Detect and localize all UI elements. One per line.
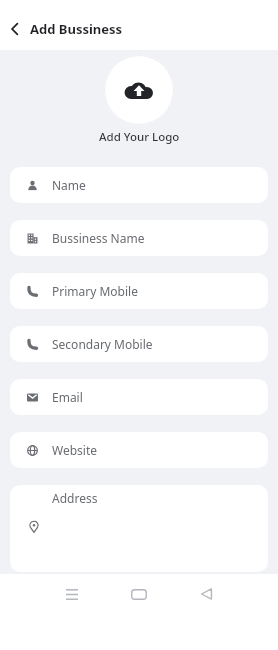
button[interactable]: Email: [10, 379, 268, 415]
staticText: Website: [52, 442, 98, 458]
button[interactable]: Bussiness Name: [10, 220, 268, 256]
button[interactable]: [64, 586, 80, 602]
button[interactable]: [104, 55, 174, 125]
staticText: Bussiness Name: [52, 230, 145, 246]
button[interactable]: Name: [10, 167, 268, 203]
staticText: Add Your Logo: [99, 129, 180, 145]
staticText: Address: [52, 490, 98, 506]
button[interactable]: [131, 586, 147, 602]
button[interactable]: [198, 586, 214, 602]
staticText: Secondary Mobile: [52, 336, 153, 352]
button[interactable]: Website: [10, 432, 268, 468]
button[interactable]: Address: [10, 485, 268, 572]
button[interactable]: [6, 20, 24, 38]
staticText: Email: [52, 389, 83, 405]
button[interactable]: Secondary Mobile: [10, 326, 268, 362]
button[interactable]: Primary Mobile: [10, 273, 268, 309]
staticText: Add Bussiness: [30, 20, 123, 38]
staticText: Primary Mobile: [52, 283, 138, 299]
staticText: Name: [52, 177, 86, 193]
